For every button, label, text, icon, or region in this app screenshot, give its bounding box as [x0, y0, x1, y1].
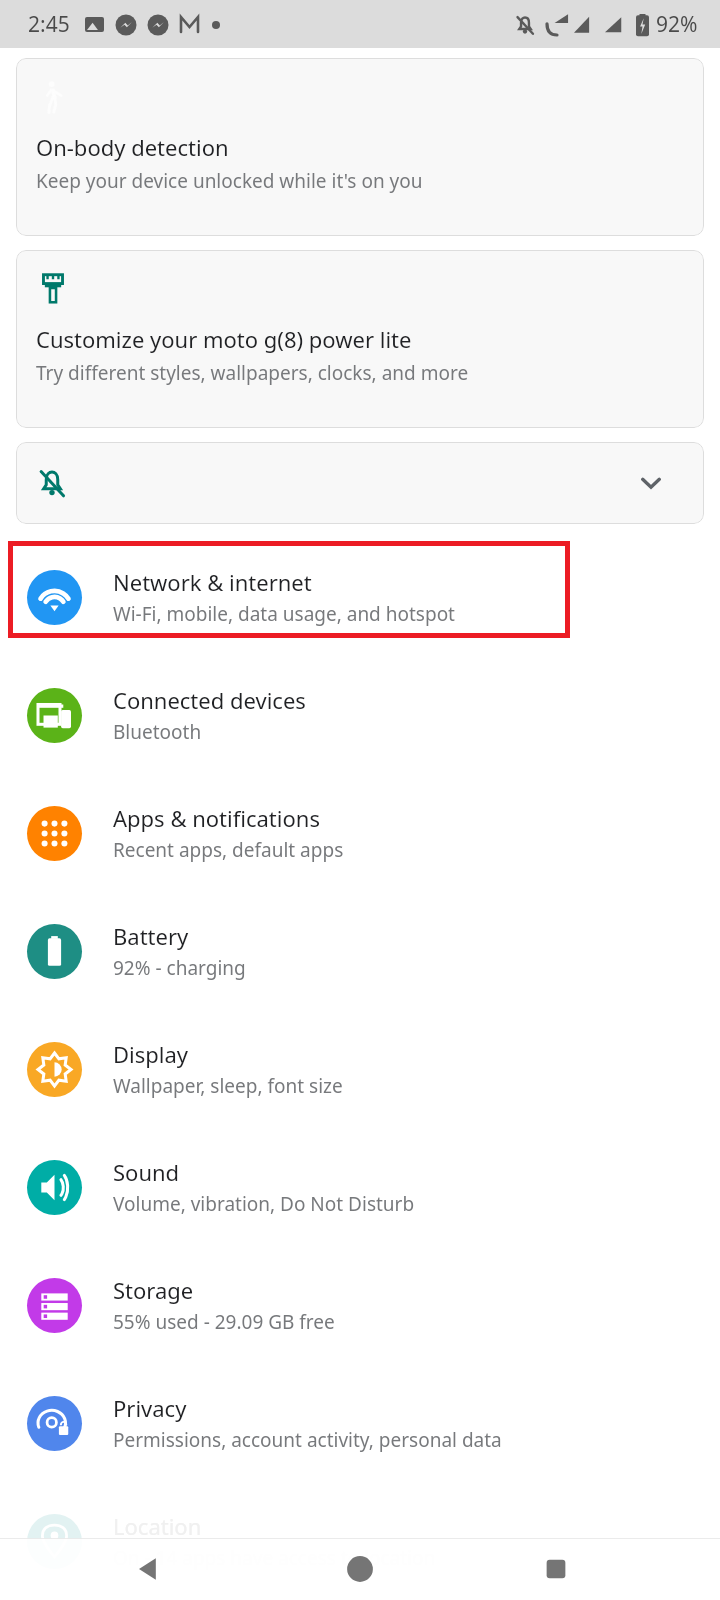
staticText: Display — [113, 1039, 189, 1069]
button[interactable]: Customize your moto g(8) power lite — [16, 250, 704, 428]
button[interactable]: Recent apps — [526, 1539, 586, 1599]
staticText: Wi-Fi, mobile, data usage, and hotspot — [113, 601, 455, 627]
staticText: Keep your device unlocked while it's on … — [36, 168, 423, 194]
staticText: Battery — [113, 921, 189, 951]
staticText: Recent apps, default apps — [113, 837, 344, 863]
staticText: Storage — [113, 1275, 194, 1305]
staticText: Volume, vibration, Do Not Disturb — [113, 1191, 415, 1217]
staticText: Try different styles, wallpapers, clocks… — [36, 360, 469, 386]
staticText: 2:45 — [28, 10, 70, 39]
button[interactable]: Back — [118, 1539, 178, 1599]
button[interactable]: On-body detection — [16, 58, 704, 236]
staticText: Sound — [113, 1157, 180, 1187]
staticText: Wallpaper, sleep, font size — [113, 1073, 343, 1099]
button[interactable]: Apps & notifications — [0, 774, 720, 892]
staticText: Apps & notifications — [113, 803, 320, 833]
staticText: Privacy — [113, 1393, 187, 1423]
staticText: Permissions, account activity, personal … — [113, 1427, 502, 1453]
button[interactable]: Home — [330, 1539, 390, 1599]
button[interactable]: Location — [0, 1482, 720, 1600]
button[interactable]: Sound — [0, 1128, 720, 1246]
button[interactable]: Connected devices — [0, 656, 720, 774]
staticText: Network & internet — [113, 567, 312, 597]
staticText: Customize your moto g(8) power lite — [36, 324, 412, 354]
staticText: Location — [113, 1511, 202, 1541]
button[interactable]: Display — [0, 1010, 720, 1128]
staticText: Connected devices — [113, 685, 306, 715]
staticText: Bluetooth — [113, 719, 202, 745]
staticText: 55% used - 29.09 GB free — [113, 1309, 335, 1335]
button[interactable]: Storage — [0, 1246, 720, 1364]
staticText: On - 14 apps have access to location — [113, 1545, 436, 1571]
button[interactable]: Expand Do Not Disturb suggestion — [16, 442, 704, 524]
staticText: 92% — [656, 10, 698, 39]
staticText: On-body detection — [36, 132, 229, 162]
staticText: 92% - charging — [113, 955, 246, 981]
button[interactable]: Network & internet — [0, 538, 720, 656]
button[interactable]: Battery — [0, 892, 720, 1010]
button[interactable]: Privacy — [0, 1364, 720, 1482]
